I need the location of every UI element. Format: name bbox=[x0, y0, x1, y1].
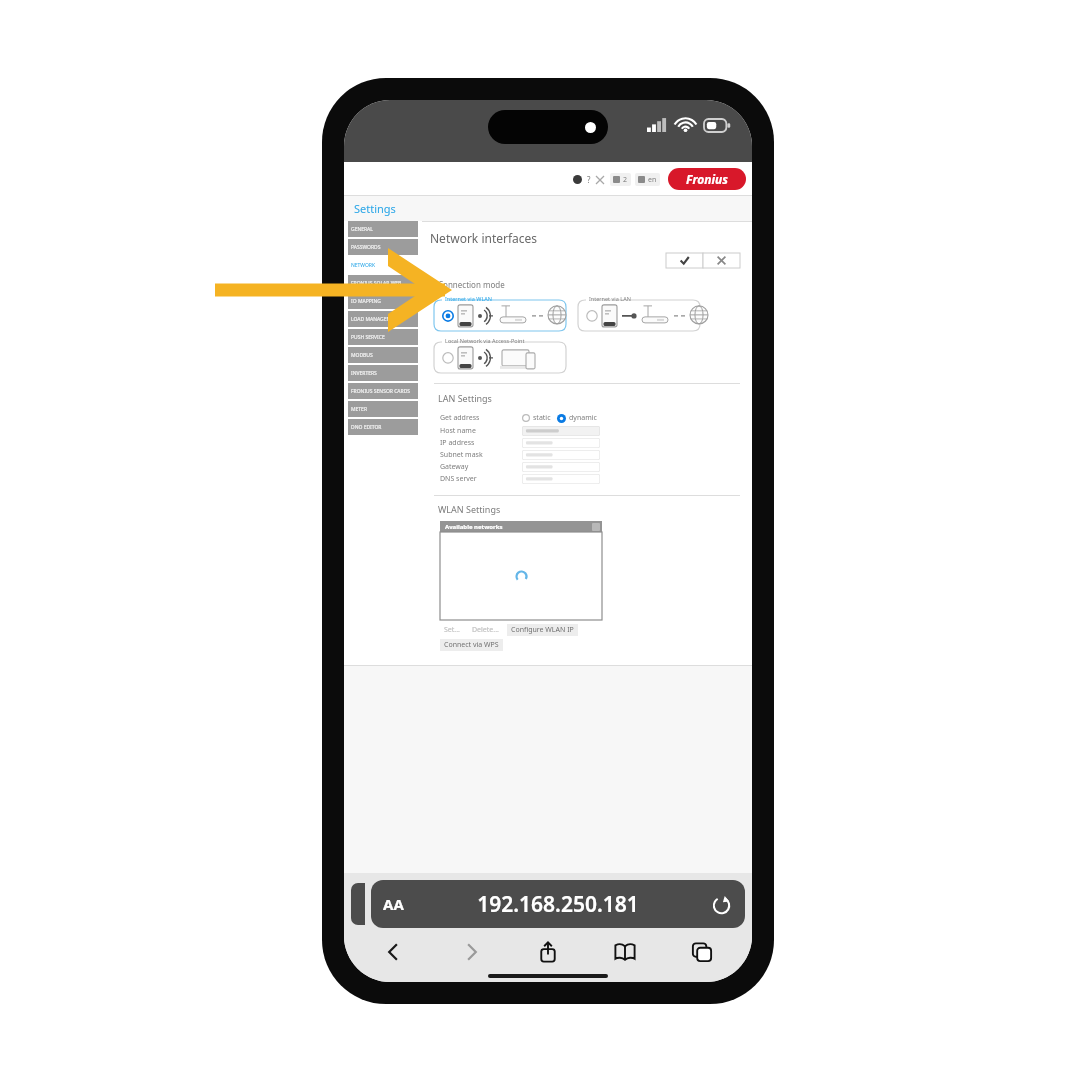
button[interactable]: Cancel bbox=[703, 253, 740, 268]
button[interactable] bbox=[522, 426, 600, 436]
button[interactable]: Reload bbox=[712, 895, 731, 914]
button[interactable]: LOAD MANAGEMENT bbox=[348, 311, 418, 327]
button[interactable]: FRONIUS SOLAR WEB bbox=[348, 275, 418, 291]
button[interactable]: Tabs bbox=[663, 935, 740, 969]
staticText: Host name bbox=[440, 426, 476, 436]
staticText: NETWORK bbox=[351, 262, 376, 269]
button[interactable]: en bbox=[635, 173, 660, 186]
staticText: Delete... bbox=[472, 625, 499, 635]
button[interactable]: METER bbox=[348, 401, 418, 417]
button[interactable]: Set... bbox=[440, 624, 464, 636]
staticText: Connect via WPS bbox=[444, 640, 499, 650]
button[interactable]: Configure WLAN IP bbox=[507, 624, 578, 636]
staticText: Local Network via Access-Point bbox=[445, 337, 525, 344]
button[interactable]: Forward bbox=[432, 935, 509, 969]
button[interactable]: MODBUS bbox=[348, 347, 418, 363]
button[interactable]: Internet via LAN bbox=[578, 295, 700, 331]
button[interactable]: PASSWORDS bbox=[348, 239, 418, 255]
staticText: GENERAL bbox=[351, 226, 373, 233]
button[interactable] bbox=[522, 474, 600, 484]
button[interactable]: 2 bbox=[610, 173, 631, 186]
button[interactable]: Fronius bbox=[668, 168, 746, 190]
staticText: Set... bbox=[444, 625, 460, 635]
staticText: LAN Settings bbox=[438, 392, 492, 404]
staticText: dynamic bbox=[569, 413, 597, 423]
staticText: PASSWORDS bbox=[351, 244, 381, 251]
button[interactable]: static bbox=[522, 413, 551, 423]
button[interactable]: Previous tab bbox=[351, 883, 365, 925]
staticText: METER bbox=[351, 406, 367, 413]
button[interactable]: Fullscreen bbox=[596, 176, 604, 184]
staticText: Fronius bbox=[686, 171, 729, 187]
button[interactable]: IO MAPPING bbox=[348, 293, 418, 309]
staticText: IP address bbox=[440, 438, 475, 448]
button[interactable]: dynamic bbox=[557, 413, 597, 423]
button[interactable]: AA bbox=[371, 880, 745, 928]
button[interactable]: INVERTERS bbox=[348, 365, 418, 381]
button[interactable]: Back bbox=[356, 935, 432, 969]
button[interactable]: FRONIUS SENSOR CARDS bbox=[348, 383, 418, 399]
staticText: DNS server bbox=[440, 474, 477, 484]
staticText: Gateway bbox=[440, 462, 469, 472]
button[interactable] bbox=[522, 450, 600, 460]
staticText: 2 bbox=[623, 175, 628, 185]
staticText: PUSH SERVICE bbox=[351, 334, 385, 341]
staticText: DNO EDITOR bbox=[351, 424, 382, 431]
staticText: MODBUS bbox=[351, 352, 373, 359]
button[interactable]: Info bbox=[573, 175, 582, 184]
staticText: INVERTERS bbox=[351, 370, 377, 377]
button[interactable]: Connect via WPS bbox=[440, 639, 503, 651]
button[interactable]: Bookmarks bbox=[586, 935, 663, 969]
staticText: FRONIUS SOLAR WEB bbox=[351, 280, 402, 287]
staticText: Subnet mask bbox=[440, 450, 483, 460]
button[interactable]: Share bbox=[509, 935, 586, 969]
staticText: ? bbox=[587, 174, 591, 185]
button[interactable]: Local Network via Access-Point bbox=[434, 337, 566, 373]
button[interactable]: Available networks bbox=[440, 521, 602, 532]
staticText: Network interfaces bbox=[430, 230, 538, 246]
staticText: Configure WLAN IP bbox=[511, 625, 574, 635]
staticText: Internet via LAN bbox=[589, 295, 631, 302]
button[interactable]: DNO EDITOR bbox=[348, 419, 418, 435]
button[interactable]: Confirm bbox=[666, 253, 703, 268]
button[interactable]: Delete... bbox=[468, 624, 503, 636]
button[interactable] bbox=[522, 438, 600, 448]
staticText: 192.168.250.181 bbox=[477, 890, 639, 919]
staticText: Settings bbox=[354, 201, 396, 216]
staticText: Get address bbox=[440, 413, 480, 423]
staticText: en bbox=[648, 175, 657, 185]
button[interactable]: NETWORK bbox=[348, 257, 418, 273]
button[interactable]: GENERAL bbox=[348, 221, 418, 237]
staticText: Connection mode bbox=[438, 279, 505, 290]
button[interactable]: Internet via WLAN bbox=[434, 295, 566, 331]
staticText: Available networks bbox=[445, 523, 503, 531]
staticText: FRONIUS SENSOR CARDS bbox=[351, 388, 411, 395]
staticText: AA bbox=[383, 894, 404, 914]
staticText: WLAN Settings bbox=[438, 503, 501, 515]
button[interactable]: PUSH SERVICE bbox=[348, 329, 418, 345]
button[interactable] bbox=[522, 462, 600, 472]
staticText: LOAD MANAGEMENT bbox=[351, 316, 401, 323]
staticText: Internet via WLAN bbox=[445, 295, 492, 302]
staticText: static bbox=[533, 413, 551, 423]
staticText: IO MAPPING bbox=[351, 298, 381, 305]
